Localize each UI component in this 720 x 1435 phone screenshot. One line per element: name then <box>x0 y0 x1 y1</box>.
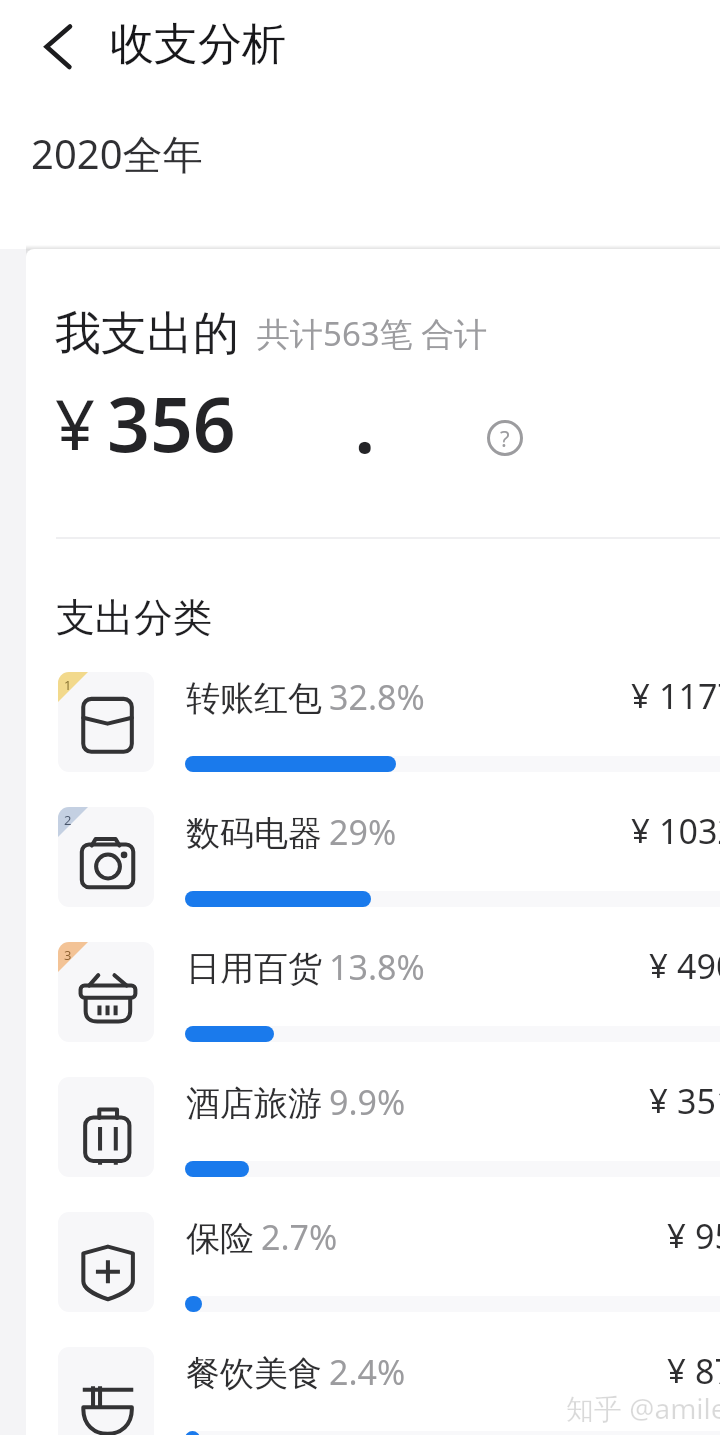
button[interactable] <box>0 1065 720 1200</box>
staticText: 32.8% <box>329 674 425 720</box>
staticText: ¥ <box>649 1078 668 1123</box>
staticText: 13.8% <box>329 944 425 990</box>
staticText: 数码电器 <box>186 812 322 855</box>
staticText: 351.00 <box>677 1078 720 1124</box>
staticText: 酒店旅游 <box>186 1082 322 1125</box>
staticText: ¥ <box>667 1348 686 1393</box>
staticText: 保险 <box>186 1217 254 1260</box>
staticText: 餐饮美食 <box>186 1352 322 1395</box>
staticText: 知乎 @amilet <box>566 1389 720 1427</box>
staticText: 支出分类 <box>56 593 212 642</box>
button[interactable] <box>0 795 720 930</box>
staticText: 1 <box>64 676 72 694</box>
staticText: 1177.06 <box>659 673 720 719</box>
button[interactable] <box>0 1200 720 1335</box>
staticText: 收支分析 <box>110 17 286 72</box>
staticText: ¥ <box>649 943 668 988</box>
staticText: 共计563笔 合计 <box>257 311 488 356</box>
staticText: 356 <box>107 372 236 474</box>
staticText: 2.7% <box>261 1214 338 1260</box>
staticText: ? <box>500 423 510 453</box>
button[interactable] <box>0 660 720 795</box>
staticText: 9.9% <box>329 1079 406 1125</box>
button[interactable]: Back <box>23 12 93 82</box>
staticText: 490.92 <box>677 943 720 989</box>
staticText: 2 <box>64 811 72 829</box>
staticText: 日用百货 <box>186 947 322 990</box>
staticText: ¥ <box>631 808 650 853</box>
staticText: 87.30 <box>695 1348 720 1394</box>
staticText: 95.80 <box>695 1213 720 1259</box>
button[interactable] <box>0 1335 720 1435</box>
staticText: 3 <box>64 946 72 964</box>
staticText: 1032.40 <box>659 808 720 854</box>
staticText: 我支出的 <box>55 305 239 363</box>
staticText: ¥ <box>667 1213 686 1258</box>
staticText: 2.4% <box>329 1349 406 1395</box>
staticText: ¥ <box>55 375 96 470</box>
button[interactable] <box>0 930 720 1065</box>
staticText: 转账红包 <box>186 677 322 720</box>
staticText: 29% <box>329 809 397 855</box>
staticText: ¥ <box>631 673 650 718</box>
staticText: . <box>354 370 376 476</box>
staticText: 2020全年 <box>31 126 203 181</box>
button[interactable]: Help <box>487 420 523 456</box>
